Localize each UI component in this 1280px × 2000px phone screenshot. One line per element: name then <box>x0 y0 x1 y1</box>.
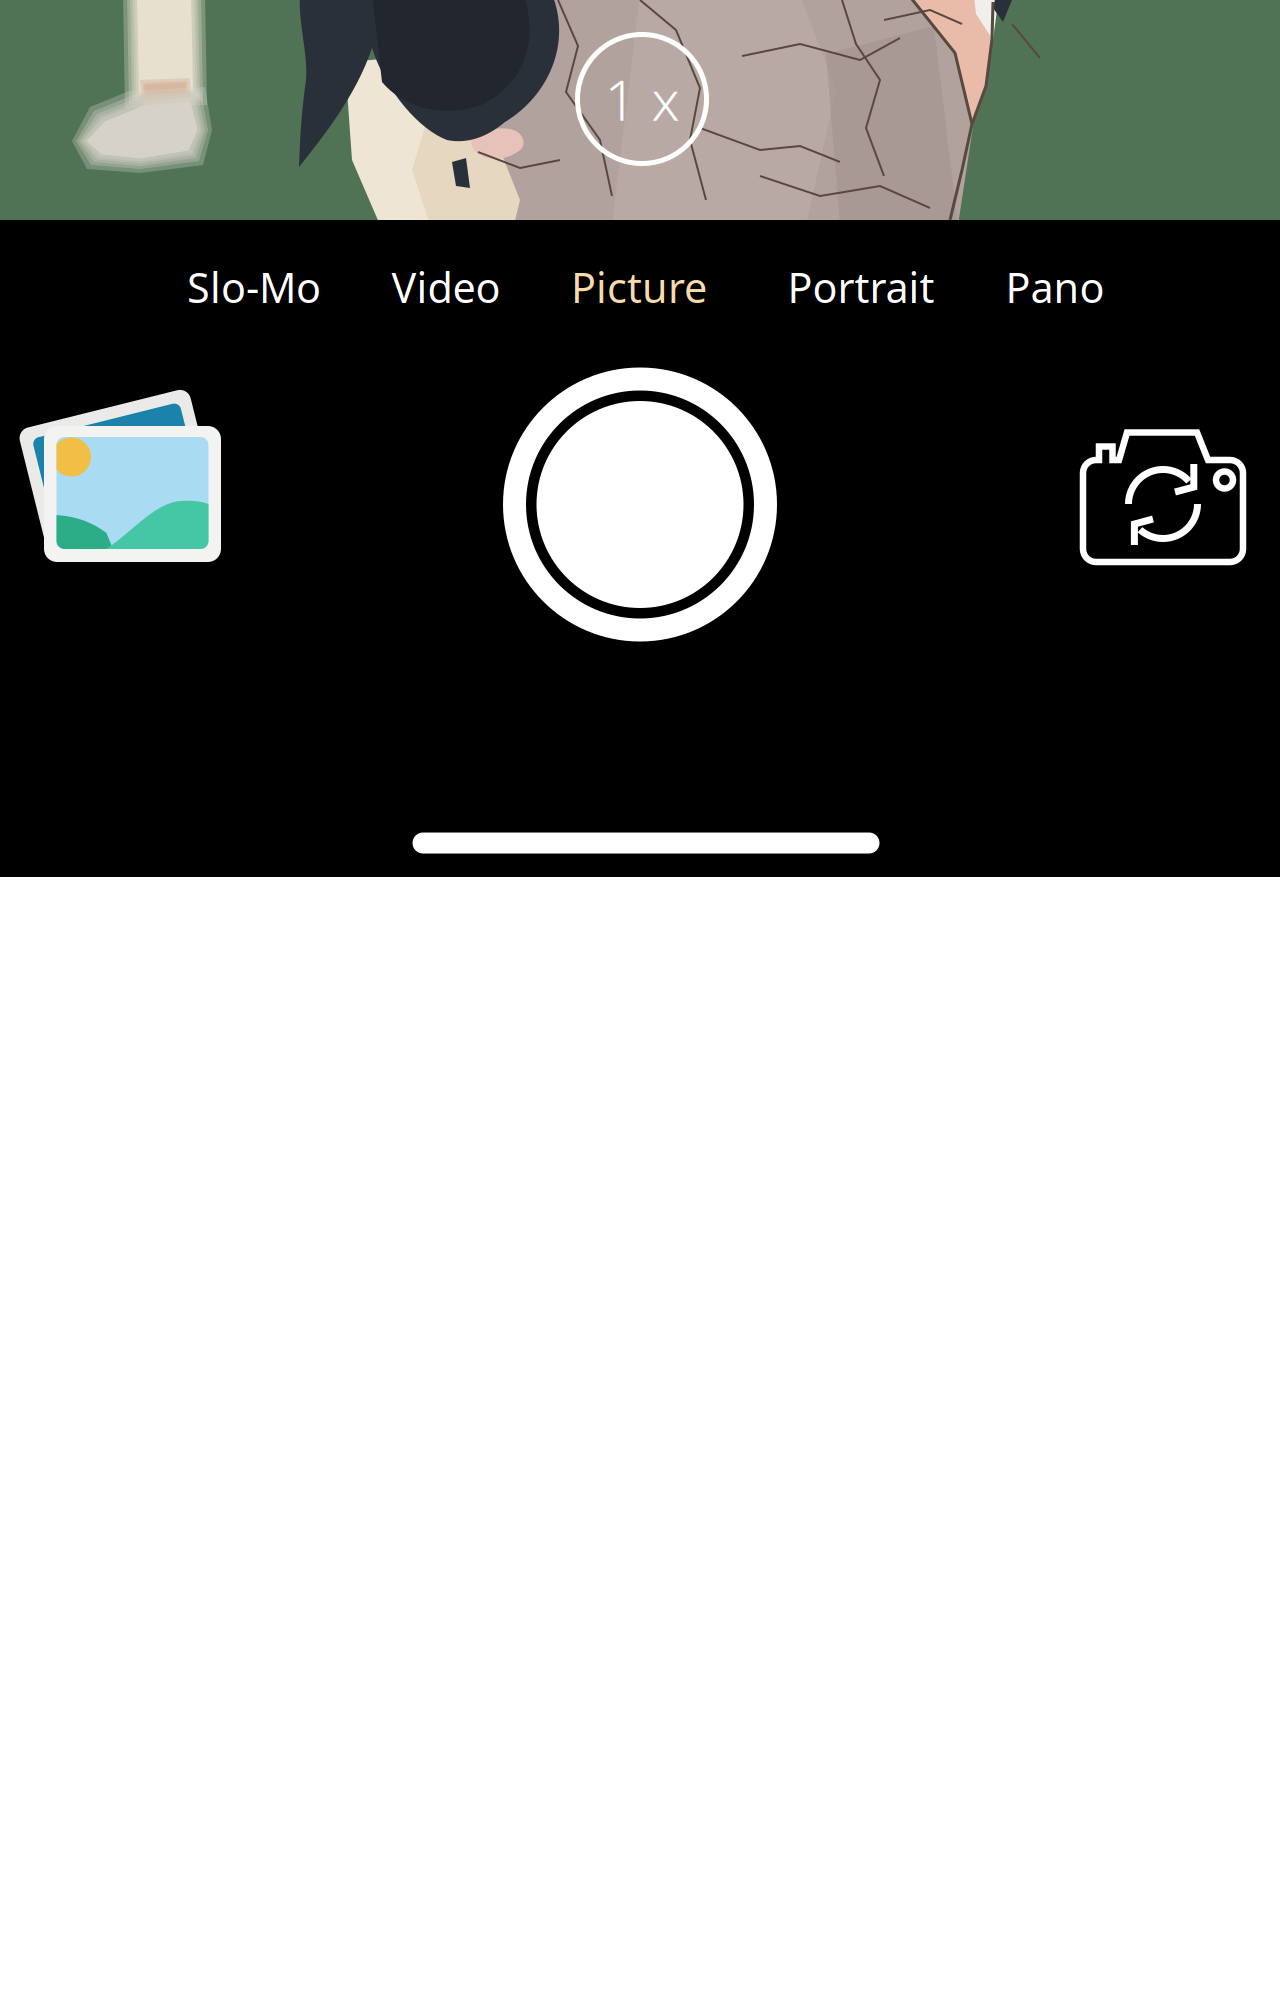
button[interactable]: Photo Library <box>8 375 238 575</box>
staticText: Picture <box>571 260 707 314</box>
button[interactable]: Portrait <box>741 257 981 317</box>
staticText: Slo-Mo <box>187 260 321 314</box>
button[interactable]: Flip Camera <box>1075 420 1255 575</box>
button[interactable]: Video <box>326 257 566 317</box>
button[interactable]: Take Picture <box>500 364 780 644</box>
button[interactable]: Pano <box>935 257 1175 317</box>
staticText: 1 x <box>604 62 679 136</box>
staticText: Video <box>391 260 500 314</box>
button[interactable]: Picture <box>519 257 759 317</box>
button[interactable]: Zoom one times <box>567 24 717 174</box>
staticText: Portrait <box>787 260 934 314</box>
staticText: Pano <box>1005 260 1104 314</box>
button[interactable]: Slo-Mo <box>134 257 374 317</box>
